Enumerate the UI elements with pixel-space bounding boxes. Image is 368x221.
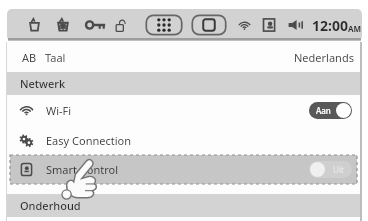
staticText: Nederlands [294, 50, 354, 65]
staticText: Taal [45, 50, 66, 65]
staticText: Smart Control [46, 162, 119, 177]
button[interactable]: Uit [309, 161, 352, 178]
staticText: 12:00 [312, 16, 348, 35]
staticText: Wi-Fi [46, 103, 72, 118]
button[interactable]: AB [7, 42, 361, 72]
staticText: Uit [333, 164, 345, 175]
staticText: Easy Connection [46, 133, 131, 148]
button[interactable]: Smart Control [7, 155, 361, 184]
staticText: Onderhoud [20, 198, 81, 213]
button[interactable]: Wi-Fi [7, 95, 361, 126]
staticText: Aan [316, 105, 331, 116]
staticText: AB [22, 50, 37, 65]
staticText: AM [348, 23, 361, 34]
button[interactable]: Aan [309, 102, 352, 119]
staticText: Netwerk [20, 76, 66, 91]
button[interactable]: Easy Connection [7, 126, 361, 155]
